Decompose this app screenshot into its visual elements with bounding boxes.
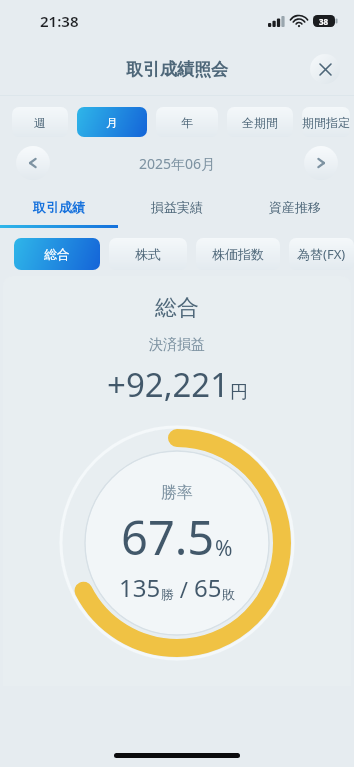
button[interactable]: 総合 — [14, 238, 100, 270]
staticText: / — [174, 574, 194, 604]
staticText: 株式 — [135, 246, 161, 262]
staticText: 期間指定 — [302, 115, 350, 130]
staticText: 損益実績 — [151, 199, 203, 215]
button[interactable]: 為替(FX) — [289, 238, 354, 270]
staticText: 株価指数 — [212, 246, 264, 262]
button[interactable]: 全期間 — [227, 107, 293, 137]
staticText: 65 — [194, 571, 222, 604]
staticText: 敗 — [222, 586, 235, 602]
button[interactable]: 株価指数 — [196, 238, 280, 270]
staticText: 67.5 — [121, 505, 215, 569]
staticText: 年 — [181, 115, 193, 130]
button[interactable]: 次の月 — [304, 146, 338, 180]
button[interactable]: 資産推移 — [236, 189, 354, 225]
staticText: 21:38 — [40, 11, 79, 31]
staticText: 2025年06月 — [139, 154, 216, 173]
staticText: 38 — [319, 16, 329, 27]
staticText: 全期間 — [242, 115, 278, 130]
staticText: 資産推移 — [269, 199, 321, 215]
staticText: 為替(FX) — [297, 245, 346, 263]
staticText: % — [215, 534, 233, 563]
button[interactable]: 損益実績 — [118, 189, 236, 225]
staticText: 総合 — [155, 294, 199, 322]
button[interactable]: 期間指定 — [302, 107, 350, 137]
button[interactable]: 前の月 — [16, 146, 50, 180]
button[interactable]: 週 — [12, 107, 68, 137]
staticText: 取引成績照会 — [126, 59, 228, 80]
staticText: 勝率 — [161, 483, 193, 503]
button[interactable]: 株式 — [109, 238, 187, 270]
button[interactable]: 月 — [77, 107, 147, 137]
staticText: 決済損益 — [149, 336, 205, 354]
button[interactable]: 閉じる — [310, 54, 340, 84]
staticText: 月 — [106, 115, 118, 130]
staticText: 総合 — [44, 246, 70, 262]
staticText: 取引成績 — [33, 199, 85, 215]
staticText: +92,221 — [107, 362, 230, 407]
staticText: 135 — [119, 571, 161, 604]
staticText: 勝 — [161, 586, 174, 602]
staticText: 週 — [34, 115, 46, 130]
staticText: 円 — [230, 381, 248, 404]
button[interactable]: 年 — [156, 107, 218, 137]
button[interactable]: 取引成績 — [0, 189, 118, 225]
